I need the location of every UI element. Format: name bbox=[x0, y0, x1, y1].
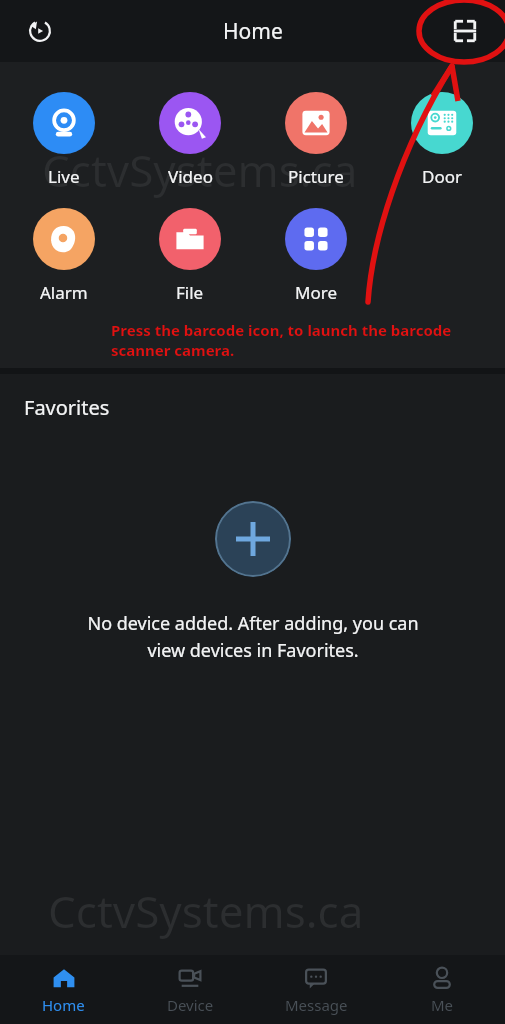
staticText: Favorites bbox=[24, 394, 110, 421]
button[interactable]: Add device bbox=[215, 501, 291, 577]
button[interactable]: Me bbox=[379, 965, 505, 1015]
button[interactable]: Live bbox=[0, 88, 127, 192]
button[interactable]: Device bbox=[127, 965, 253, 1015]
staticText: CctvSystems.ca bbox=[48, 881, 364, 941]
staticText: Press the barcode icon, to launch the ba… bbox=[111, 320, 452, 360]
button[interactable]: Scan barcode bbox=[443, 9, 487, 53]
staticText: No device added. After adding, you can v… bbox=[87, 611, 419, 662]
staticText: File bbox=[176, 281, 204, 304]
button[interactable]: File bbox=[127, 204, 253, 308]
button[interactable]: Alarm bbox=[0, 204, 127, 308]
staticText: Door bbox=[422, 165, 463, 188]
staticText: Device bbox=[167, 995, 214, 1015]
staticText: More bbox=[295, 281, 337, 304]
button[interactable]: Message bbox=[253, 965, 379, 1015]
staticText: Home bbox=[223, 17, 283, 46]
button[interactable]: More bbox=[253, 204, 379, 308]
staticText: Me bbox=[431, 995, 454, 1015]
button[interactable]: History bbox=[18, 9, 62, 53]
button[interactable]: Picture bbox=[253, 88, 379, 192]
staticText: Message bbox=[285, 995, 348, 1015]
button[interactable]: Home bbox=[0, 965, 127, 1015]
staticText: CctvSystems.ca bbox=[42, 140, 358, 200]
staticText: Picture bbox=[288, 165, 344, 188]
button[interactable]: Video bbox=[127, 88, 253, 192]
staticText: Video bbox=[168, 165, 213, 188]
button[interactable]: Door bbox=[379, 88, 505, 192]
staticText: Live bbox=[48, 165, 80, 188]
staticText: Alarm bbox=[40, 281, 88, 304]
staticText: Home bbox=[42, 995, 85, 1015]
